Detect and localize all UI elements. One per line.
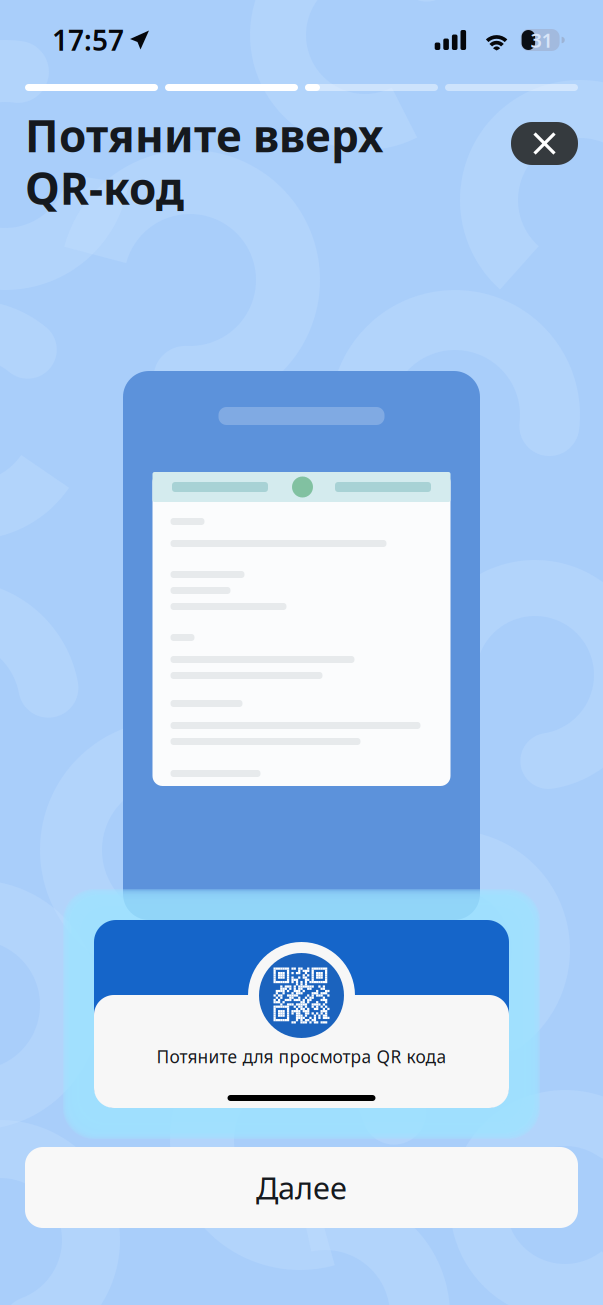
staticText: Потяните вверх [25,106,383,164]
staticText: 31 [531,27,553,53]
staticText: 17:57 [52,21,124,59]
staticText: Потяните для просмотра QR кода [156,1045,446,1068]
staticText: QR-код [25,158,184,217]
button[interactable]: Закрыть [511,122,578,165]
staticText: Далее [256,1167,347,1208]
button[interactable]: Далее [25,1147,578,1228]
